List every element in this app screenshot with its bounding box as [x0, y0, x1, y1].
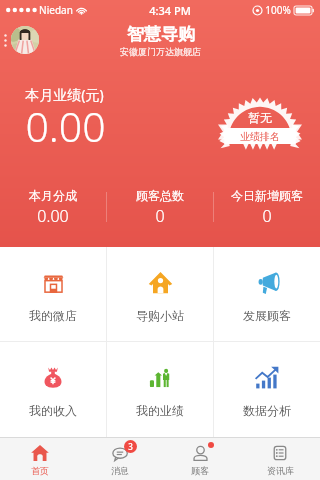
- staticText: 安徽厦门万达旗舰店: [120, 46, 201, 57]
- staticText: 首页: [31, 465, 49, 476]
- staticText: 我的业绩: [136, 403, 184, 418]
- staticText: 消息: [111, 465, 129, 476]
- button[interactable]: 3: [80, 438, 160, 480]
- staticText: 数据分析: [243, 403, 291, 418]
- button[interactable]: 资讯库: [240, 438, 320, 480]
- staticText: 顾客总数: [136, 188, 184, 203]
- staticText: 导购小站: [136, 308, 184, 323]
- button[interactable]: 我的微店: [0, 247, 106, 341]
- staticText: 智慧导购: [127, 24, 195, 45]
- staticText: 0.00: [37, 205, 69, 227]
- staticText: 顾客: [191, 465, 209, 476]
- staticText: 4:34 PM: [149, 3, 191, 18]
- staticText: 0: [155, 205, 165, 227]
- staticText: 3: [128, 441, 133, 452]
- button[interactable]: 发展顾客: [214, 247, 320, 341]
- staticText: 今日新增顾客: [231, 188, 303, 203]
- button[interactable]: 顾客: [160, 438, 240, 480]
- button[interactable]: 导购小站: [107, 247, 213, 341]
- button[interactable]: 我的收入: [0, 342, 106, 437]
- staticText: 业绩排名: [240, 130, 280, 143]
- button[interactable]: 我的业绩: [107, 342, 213, 437]
- staticText: Niedan: [39, 3, 73, 17]
- staticText: 我的微店: [29, 308, 77, 323]
- staticText: 我的收入: [29, 403, 77, 418]
- button[interactable]: 今日新增顾客: [214, 181, 320, 233]
- button[interactable]: Profile: [11, 26, 39, 54]
- staticText: 本月业绩(元): [25, 85, 104, 104]
- staticText: 0.00: [25, 98, 106, 154]
- button[interactable]: 首页: [0, 438, 80, 480]
- button[interactable]: 本月分成: [0, 181, 106, 233]
- staticText: 发展顾客: [243, 308, 291, 323]
- staticText: 0: [262, 205, 272, 227]
- button[interactable]: 数据分析: [214, 342, 320, 437]
- staticText: 资讯库: [267, 465, 294, 476]
- staticText: 100%: [265, 3, 291, 17]
- button[interactable]: 顾客总数: [107, 181, 213, 233]
- staticText: 暂无: [248, 110, 272, 125]
- staticText: 本月分成: [29, 188, 77, 203]
